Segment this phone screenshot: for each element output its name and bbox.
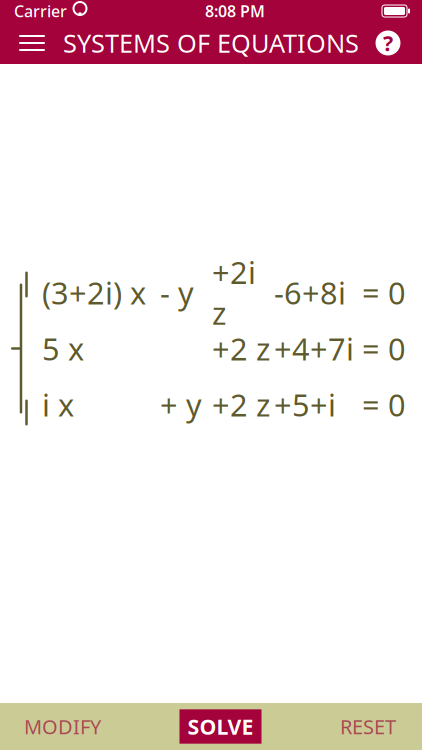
staticText: Carrier (14, 0, 67, 22)
staticText: -6+8i (274, 272, 346, 313)
button[interactable]: Menu (10, 22, 54, 64)
button[interactable]: SOLVE (179, 709, 261, 744)
staticText: i x (42, 384, 74, 425)
staticText: + y (160, 384, 202, 425)
staticText: +2 z (212, 384, 270, 425)
staticText: +2i z (212, 252, 256, 333)
staticText: 5 x (42, 328, 84, 369)
staticText: = 0 (362, 272, 406, 313)
staticText: +5+i (274, 384, 336, 425)
staticText: MODIFY (24, 713, 101, 740)
button[interactable]: MODIFY (10, 701, 115, 750)
staticText: ? (383, 29, 393, 57)
staticText: (3+2i) x (42, 272, 146, 313)
staticText: SYSTEMS OF EQUATIONS (63, 26, 359, 60)
staticText: SOLVE (187, 712, 253, 741)
button[interactable]: Help (366, 22, 410, 64)
staticText: +4+7i (274, 328, 354, 369)
staticText: - y (160, 272, 194, 313)
staticText: = 0 (362, 384, 406, 425)
staticText: RESET (340, 713, 396, 740)
staticText: +2 z (212, 328, 270, 369)
staticText: 8:08 PM (205, 0, 265, 22)
staticText: = 0 (362, 328, 406, 369)
button[interactable]: RESET (326, 701, 410, 750)
